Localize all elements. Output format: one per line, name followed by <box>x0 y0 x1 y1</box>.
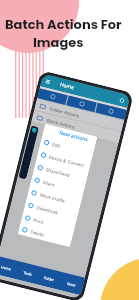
staticText: Tools <box>23 270 33 277</box>
button[interactable] <box>37 88 68 105</box>
button[interactable]: Move Inside <box>27 185 82 210</box>
button[interactable]: Folder <box>36 267 63 290</box>
button[interactable]: Edit <box>39 134 95 160</box>
staticText: Images <box>33 33 84 51</box>
button[interactable]: Home <box>0 256 19 279</box>
staticText: Folder Actions <box>49 105 81 119</box>
button[interactable]: More <box>58 272 85 295</box>
staticText: Resize & Convert <box>49 154 85 168</box>
staticText: Download <box>36 204 59 215</box>
staticText: Home <box>59 81 75 91</box>
button[interactable] <box>95 103 127 120</box>
button[interactable]: Folder Actions <box>34 99 124 131</box>
staticText: Delete <box>30 228 45 238</box>
button[interactable]: Print <box>20 210 76 236</box>
staticText: Batch Actions For <box>5 15 122 33</box>
staticText: Home <box>1 264 11 272</box>
staticText: Batch Actions <box>46 117 76 130</box>
button[interactable] <box>66 95 97 112</box>
staticText: Share/Send <box>45 166 71 178</box>
staticText: New actions <box>58 129 89 143</box>
button[interactable]: Share/Send <box>33 159 89 185</box>
staticText: Folder <box>43 275 55 282</box>
button[interactable]: Batch Actions <box>31 110 121 143</box>
staticText: Share <box>42 179 56 188</box>
staticText: Move Inside <box>39 191 66 204</box>
button[interactable]: Tools <box>15 261 40 284</box>
button[interactable]: Menu <box>40 74 130 108</box>
staticText: Print <box>33 217 45 225</box>
staticText: Edit <box>52 141 62 149</box>
button[interactable]: Share <box>30 172 85 198</box>
button[interactable]: Resize & Convert <box>36 147 92 173</box>
staticText: More <box>67 281 76 288</box>
other: Search <box>118 97 126 104</box>
button[interactable]: Download <box>24 197 79 223</box>
button[interactable]: Delete <box>18 223 73 247</box>
other: Menu <box>45 78 51 85</box>
